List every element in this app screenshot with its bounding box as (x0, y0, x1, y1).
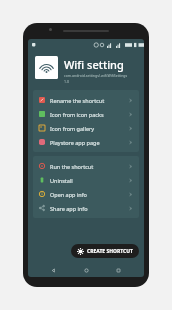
staticText: Share app info (50, 205, 88, 212)
staticText: Uninstall (50, 177, 73, 184)
staticText: Open app info (50, 191, 87, 198)
button[interactable]: Recents (112, 264, 125, 277)
button[interactable]: Share app info (33, 201, 139, 215)
button[interactable]: Uninstall (33, 173, 139, 187)
button[interactable]: Run the shortcut (33, 159, 139, 173)
button[interactable]: Playstore app page (33, 135, 139, 149)
button[interactable]: Open app info (33, 187, 139, 201)
staticText: Icon from gallery (50, 125, 95, 132)
staticText: com.android.settings/.wifi.WifiSettings (64, 73, 128, 78)
button[interactable]: Icon from gallery (33, 121, 139, 135)
button[interactable]: Back (47, 264, 60, 277)
button[interactable]: Icon from icon packs (33, 107, 139, 121)
staticText: Rename the shortcut (50, 97, 105, 104)
staticText: Icon from icon packs (50, 111, 104, 118)
staticText: Wifi setting (64, 57, 124, 72)
button[interactable]: Home (80, 264, 93, 277)
staticText: Playstore app page (50, 139, 100, 146)
staticText: Run the shortcut (50, 163, 94, 170)
button[interactable]: Rename the shortcut (33, 93, 139, 107)
staticText: 1.0 (64, 79, 69, 84)
staticText: CREATE SHORTCUT (87, 248, 133, 255)
button[interactable]: CREATE SHORTCUT (71, 244, 139, 258)
